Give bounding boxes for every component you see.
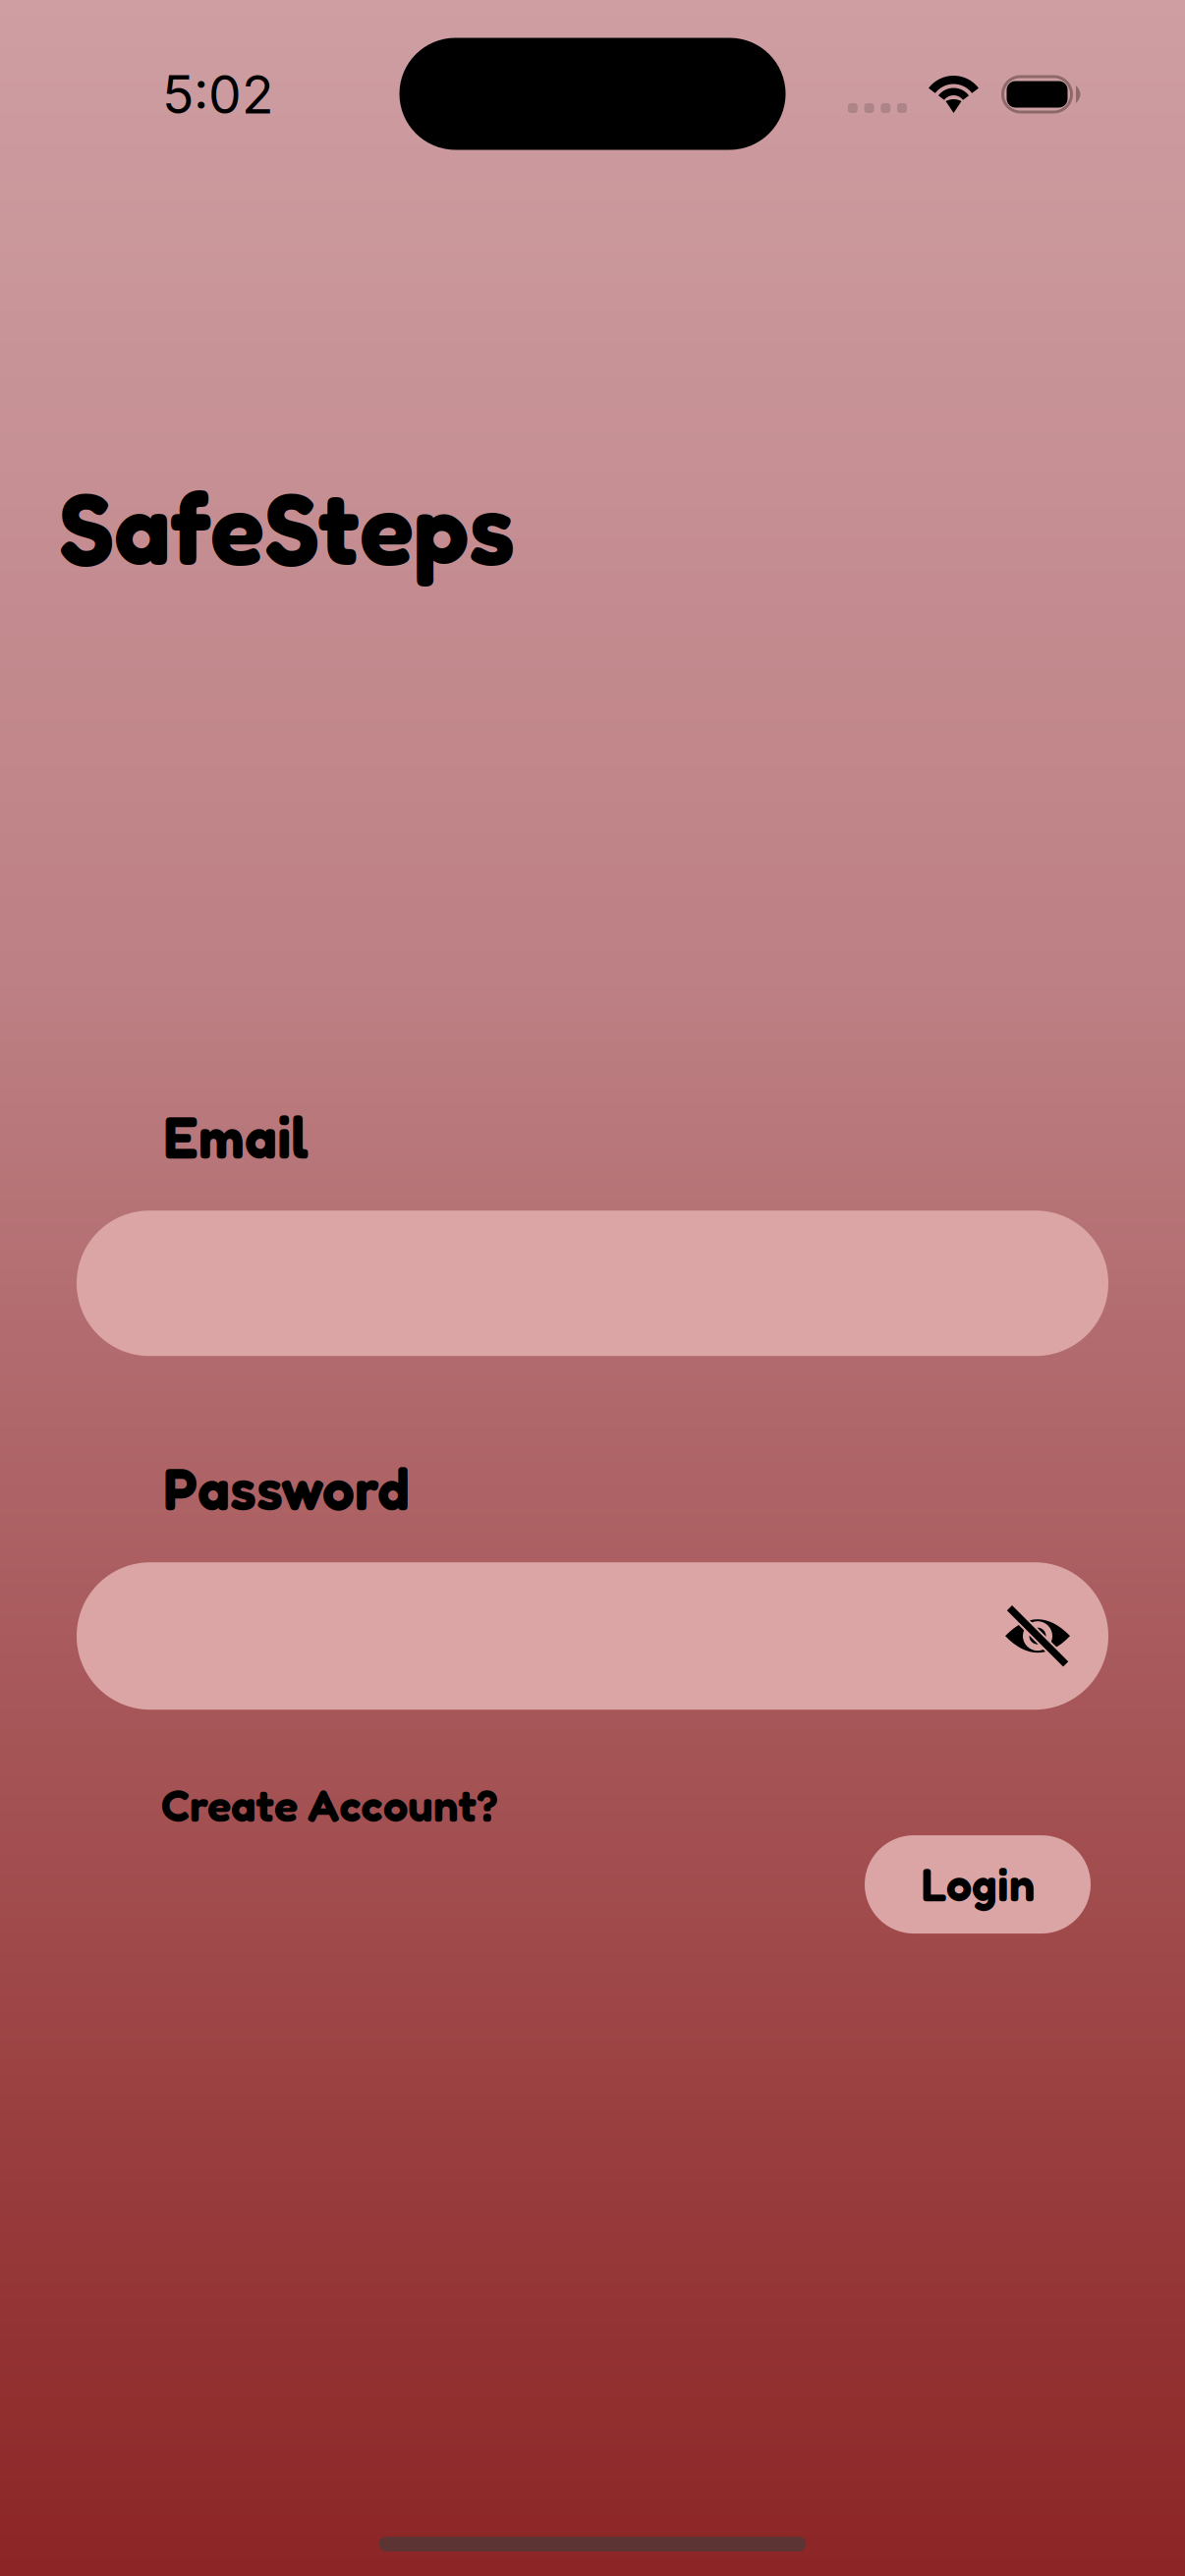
button[interactable]: Create Account?: [0, 1770, 498, 1835]
staticText: Email: [163, 1102, 309, 1171]
staticText: 5:02: [162, 63, 274, 126]
staticText: Create Account?: [161, 1778, 498, 1832]
staticText: Login: [921, 1857, 1035, 1912]
staticText: Password: [163, 1453, 410, 1523]
staticText: SafeSteps: [59, 466, 515, 588]
button[interactable]: Show password: [1004, 1561, 1108, 1711]
button[interactable]: Email: [77, 1211, 1108, 1356]
button[interactable]: Login: [865, 1835, 1091, 1934]
button[interactable]: Password: [77, 1562, 1108, 1710]
